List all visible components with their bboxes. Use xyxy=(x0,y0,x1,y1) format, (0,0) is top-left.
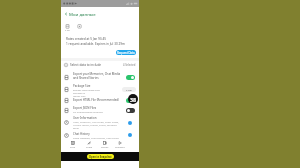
staticText: Package Size xyxy=(73,84,91,88)
button[interactable]: Toggle off xyxy=(126,108,135,113)
staticText: Login, Snapchat+, User Profile, Public P… xyxy=(73,121,119,130)
staticText: Request Data xyxy=(117,51,135,55)
button[interactable] xyxy=(61,96,139,106)
other: Storage xyxy=(65,24,70,29)
button[interactable]: Share xyxy=(84,141,94,149)
staticText: Select data to include xyxy=(70,63,102,67)
button[interactable] xyxy=(61,81,139,93)
other: Search xyxy=(77,24,82,29)
button[interactable]: Recording timer xyxy=(128,94,138,104)
button[interactable]: Request Data xyxy=(116,50,136,55)
button[interactable]: Toggle on xyxy=(126,98,135,103)
staticText: Stories xyxy=(101,146,109,149)
button[interactable]: Stories xyxy=(100,141,110,149)
button[interactable]: Select data to include xyxy=(61,62,139,68)
button[interactable] xyxy=(61,113,139,126)
staticText: Rates created at 5 Jan 93:45 xyxy=(66,37,106,41)
button[interactable]: Open in Snapchat xyxy=(87,154,114,159)
button[interactable]: Selected xyxy=(128,121,132,125)
button[interactable] xyxy=(61,130,139,143)
staticText: Мои данные xyxy=(69,11,96,17)
staticText: 2 GB xyxy=(126,88,132,91)
staticText: Export JSON Files xyxy=(73,106,97,110)
staticText: Open in Snapchat xyxy=(89,155,112,159)
button[interactable]: Back xyxy=(61,10,139,17)
staticText: Spotlight xyxy=(115,146,125,149)
button[interactable]: Toggle on xyxy=(126,75,135,80)
staticText: Chat History xyxy=(73,132,90,136)
staticText: User Information xyxy=(73,116,97,120)
other: Back xyxy=(64,12,68,16)
staticText: Share xyxy=(86,146,93,149)
button[interactable]: Spotlight xyxy=(115,141,125,149)
button[interactable]: 2 GB xyxy=(122,87,136,92)
staticText: Export HTML File (Recommended) xyxy=(73,98,119,102)
staticText: Saved Messages, Chat Sessions, Chat Hist… xyxy=(73,137,119,140)
staticText: 2 GB xyxy=(65,29,70,32)
button[interactable]: Selected xyxy=(128,133,132,137)
staticText: 4 Selected xyxy=(123,63,136,67)
staticText: Print xyxy=(70,146,76,149)
staticText: Export your Memories, Chat Media and Sha… xyxy=(73,72,121,80)
button[interactable]: Print xyxy=(68,141,78,149)
staticText: For interoperability purposes xyxy=(73,111,103,114)
staticText: 38 xyxy=(130,96,137,103)
button[interactable] xyxy=(61,104,139,114)
button[interactable] xyxy=(61,70,139,80)
staticText: 1 request available. Expires in Jul 30 2… xyxy=(66,42,125,46)
staticText: Bundles latest image data packages in re… xyxy=(73,89,109,98)
